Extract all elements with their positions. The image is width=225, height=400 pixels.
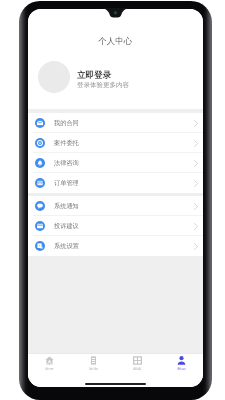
staticText: 订单管理 [54,179,79,187]
button[interactable]: 系统通知 [28,196,203,216]
button[interactable]: 订单管理 [28,173,203,193]
staticText: 立即登录 [77,70,111,81]
staticText: 系统通知 [54,202,79,210]
staticText: 服务 [133,367,142,370]
staticText: 我的合同 [54,119,79,127]
button[interactable]: 法律咨询 [28,153,203,173]
staticText: 我的 [177,367,186,370]
button[interactable]: 投诉建议 [28,216,203,236]
button[interactable]: 系统设置 [28,236,203,256]
staticText: 登录体验更多内容 [77,81,129,89]
button[interactable]: 立即登录 [28,57,203,97]
button[interactable]: 案件委托 [28,133,203,153]
staticText: 法律咨询 [54,159,79,167]
button[interactable]: 咨询 [71,356,115,370]
button[interactable]: 我的 [159,356,203,370]
staticText: 咨询 [89,367,98,370]
button[interactable]: 我的合同 [28,113,203,133]
staticText: 投诉建议 [54,222,79,230]
staticText: 系统设置 [54,242,79,250]
staticText: 个人中心 [98,36,133,47]
button[interactable]: 服务 [115,356,159,370]
staticText: 案件委托 [54,139,79,147]
button[interactable]: 首页 [28,356,71,370]
staticText: 首页 [45,367,54,370]
